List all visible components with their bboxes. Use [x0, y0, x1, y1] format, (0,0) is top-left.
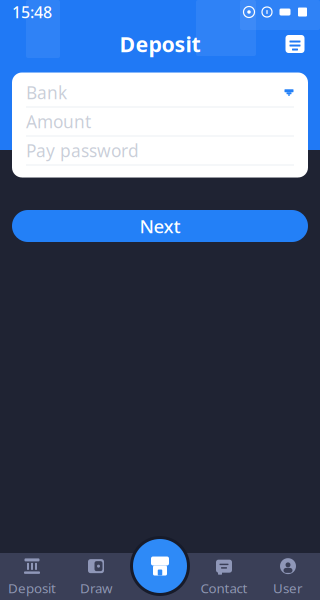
- staticText: Pay password: [26, 139, 139, 162]
- button[interactable]: Home: [129, 535, 191, 597]
- button[interactable]: Contact: [192, 553, 256, 600]
- button[interactable]: Pay password: [12, 136, 308, 164]
- staticText: Bank: [26, 81, 67, 104]
- button[interactable]: Bank: [12, 78, 308, 106]
- button[interactable]: Calendar: [278, 27, 312, 61]
- button[interactable]: Deposit: [0, 553, 64, 600]
- staticText: 15:48: [12, 1, 52, 23]
- button[interactable]: Next: [12, 210, 308, 242]
- staticText: Contact: [200, 579, 247, 597]
- button[interactable]: Amount: [12, 107, 308, 135]
- button[interactable]: User: [256, 553, 320, 600]
- staticText: User: [273, 579, 303, 597]
- staticText: Next: [139, 214, 180, 238]
- staticText: Amount: [26, 110, 91, 133]
- staticText: Draw: [80, 579, 112, 597]
- button[interactable]: Draw: [64, 553, 128, 600]
- staticText: Deposit: [8, 579, 56, 597]
- staticText: Deposit: [119, 30, 200, 58]
